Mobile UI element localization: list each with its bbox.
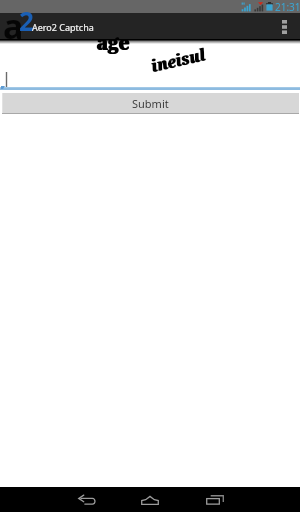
staticText: 2 <box>19 3 34 38</box>
button[interactable]: Submit <box>2 93 299 114</box>
button[interactable]: Back <box>68 487 106 512</box>
staticText: age <box>97 29 130 56</box>
staticText: age <box>96 29 129 56</box>
button[interactable] <box>0 70 300 90</box>
staticText: Submit <box>132 96 169 111</box>
staticText: age <box>97 29 130 56</box>
button[interactable]: More options <box>268 13 300 40</box>
button[interactable]: Home <box>131 487 169 512</box>
staticText: Aero2 Captcha <box>32 21 94 33</box>
staticText: ineisul <box>149 43 208 78</box>
staticText: a <box>3 3 24 49</box>
staticText: ineisul <box>148 43 207 78</box>
button[interactable]: Recent apps <box>196 487 234 512</box>
staticText: 21:31 <box>275 0 300 13</box>
